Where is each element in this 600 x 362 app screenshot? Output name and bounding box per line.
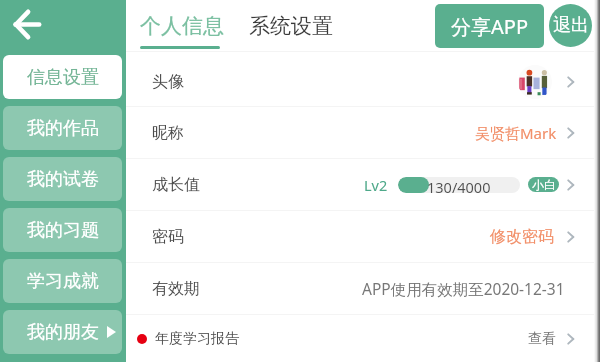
- staticText: 130/4000: [427, 177, 491, 193]
- staticText: 个人信息: [140, 13, 224, 39]
- button[interactable]: 有效期: [126, 263, 600, 314]
- button[interactable]: 成长值: [126, 159, 600, 210]
- staticText: 系统设置: [249, 13, 333, 39]
- button[interactable]: 我的朋友: [3, 310, 122, 354]
- button[interactable]: 年度学习报告: [126, 315, 600, 362]
- button[interactable]: 我的习题: [3, 208, 122, 252]
- button[interactable]: 个人信息: [140, 0, 224, 51]
- staticText: 信息设置: [27, 66, 99, 89]
- staticText: 查看: [528, 330, 556, 348]
- button[interactable]: 头像: [126, 52, 600, 106]
- button[interactable]: 退出: [549, 4, 592, 47]
- staticText: 退出: [553, 14, 589, 37]
- staticText: 分享APP: [451, 13, 528, 40]
- staticText: 学习成就: [27, 270, 99, 293]
- staticText: 头像: [152, 72, 184, 92]
- button[interactable]: 我的试卷: [3, 157, 122, 201]
- button[interactable]: 昵称: [126, 107, 600, 158]
- button[interactable]: 密码: [126, 211, 600, 262]
- staticText: 年度学习报告: [155, 330, 239, 348]
- staticText: 成长值: [152, 175, 200, 195]
- button[interactable]: Back: [11, 9, 41, 39]
- button[interactable]: 分享APP: [435, 4, 544, 48]
- staticText: 小白: [532, 177, 556, 192]
- button[interactable]: 学习成就: [3, 259, 122, 303]
- staticText: 我的作品: [27, 117, 99, 140]
- staticText: 我的试卷: [27, 168, 99, 191]
- staticText: 昵称: [152, 123, 184, 143]
- staticText: 我的朋友: [27, 321, 99, 344]
- staticText: 我的习题: [27, 219, 99, 242]
- button[interactable]: 系统设置: [249, 0, 333, 51]
- staticText: 密码: [152, 227, 184, 247]
- staticText: 吴贤哲Mark: [475, 123, 557, 143]
- staticText: 修改密码: [490, 227, 554, 247]
- staticText: 有效期: [152, 279, 200, 299]
- staticText: APP使用有效期至2020-12-31: [362, 278, 565, 299]
- button[interactable]: 我的作品: [3, 106, 122, 150]
- staticText: Lv2: [364, 175, 388, 195]
- button[interactable]: 信息设置: [3, 55, 122, 99]
